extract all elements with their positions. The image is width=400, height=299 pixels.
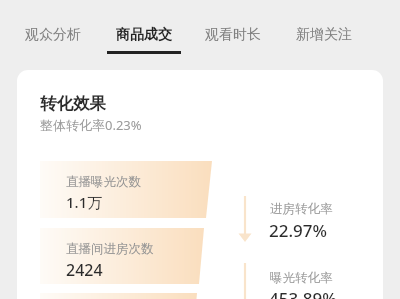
button[interactable]: 商品成交	[107, 14, 181, 54]
staticText: 进房转化率	[270, 201, 333, 217]
staticText: 转化效果	[40, 93, 106, 114]
staticText: 曝光转化率	[270, 270, 333, 286]
staticText: 观众分析	[25, 26, 81, 44]
button[interactable]: 新增关注	[287, 14, 361, 54]
staticText: 整体转化率0.23%	[40, 116, 142, 134]
staticText: 新增关注	[296, 26, 352, 44]
staticText: 直播曝光次数	[66, 174, 141, 190]
staticText: 观看时长	[205, 26, 261, 44]
staticText: 1.1万	[66, 192, 103, 212]
staticText: 22.97%	[269, 219, 328, 242]
staticText: 453.89%	[269, 287, 337, 299]
button[interactable]: 观众分析	[16, 14, 90, 54]
staticText: 2424	[66, 259, 103, 281]
staticText: 商品成交	[116, 26, 172, 44]
button[interactable]: 观看时长	[196, 14, 270, 54]
staticText: 直播间进房次数	[66, 241, 154, 257]
